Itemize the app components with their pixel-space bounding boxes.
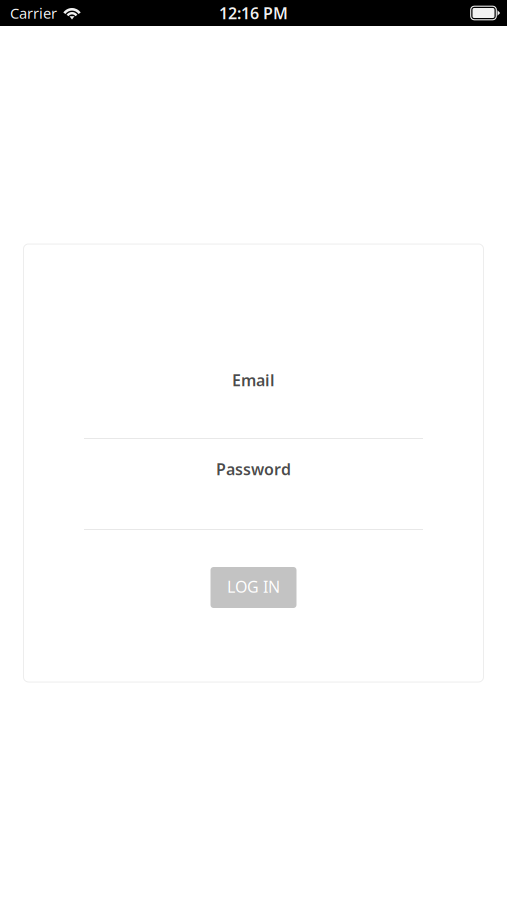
button[interactable]: Email <box>84 244 423 439</box>
button[interactable]: Password <box>84 439 423 530</box>
staticText: Email <box>232 369 275 391</box>
staticText: 12:16 PM <box>219 2 288 24</box>
staticText: Password <box>216 458 291 480</box>
button[interactable]: LOG IN <box>210 567 296 608</box>
staticText: LOG IN <box>227 576 280 597</box>
staticText: Carrier <box>10 3 57 23</box>
